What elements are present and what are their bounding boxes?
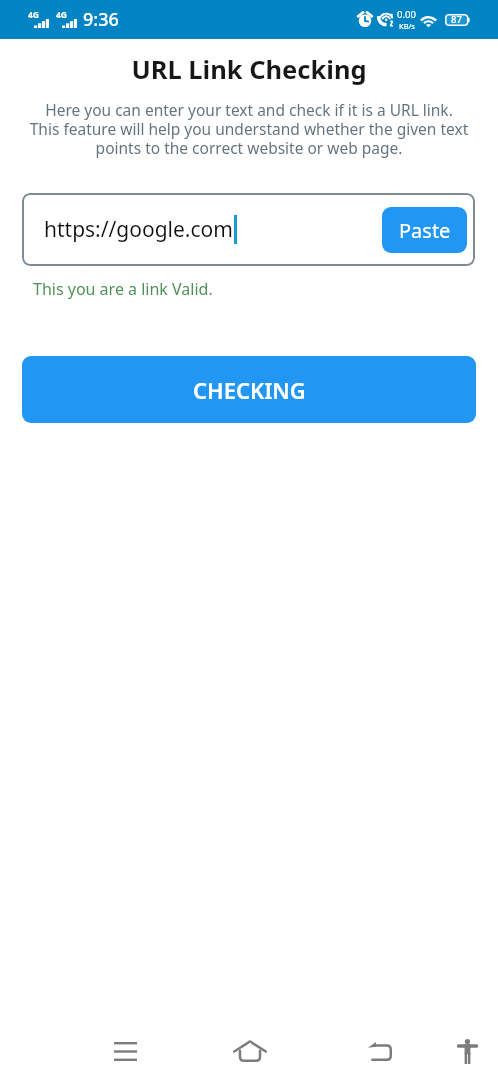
staticText: 4G xyxy=(56,9,68,21)
staticText: CHECKING xyxy=(193,375,306,405)
staticText: 4G xyxy=(28,9,40,21)
staticText: KB/s xyxy=(399,21,415,31)
button[interactable]: https://google.com xyxy=(22,193,475,266)
staticText: 9:36 xyxy=(83,7,119,32)
staticText: 0.00 xyxy=(397,8,416,21)
button[interactable]: Home xyxy=(219,1020,281,1080)
staticText: https://google.com xyxy=(44,215,233,244)
staticText: Paste xyxy=(399,217,451,244)
staticText: URL Link Checking xyxy=(0,52,498,87)
button[interactable]: Back xyxy=(349,1020,411,1080)
button[interactable]: Accessibility xyxy=(436,1020,498,1080)
staticText: Here you can enter your text and check i… xyxy=(0,99,498,159)
staticText: This you are a link Valid. xyxy=(33,278,213,300)
staticText: 87 xyxy=(451,13,462,26)
button[interactable]: CHECKING xyxy=(22,356,476,423)
button[interactable]: Paste xyxy=(382,207,467,253)
button[interactable]: Recent apps xyxy=(94,1020,156,1080)
